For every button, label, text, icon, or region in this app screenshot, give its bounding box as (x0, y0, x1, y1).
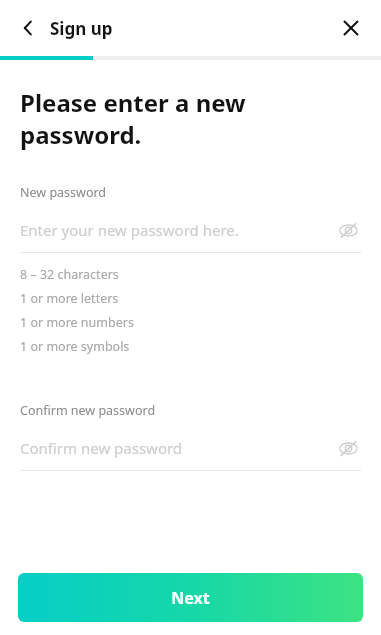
staticText: 1 or more numbers (20, 314, 134, 331)
button[interactable]: Show password (335, 435, 361, 461)
staticText: Please enter a new password. (20, 86, 246, 151)
button[interactable]: Back (6, 6, 50, 50)
staticText: Confirm new password (20, 438, 335, 458)
button[interactable]: Next (18, 573, 363, 622)
button[interactable]: Confirm new password (20, 435, 361, 461)
staticText: Confirm new password (20, 402, 156, 419)
button[interactable]: Show password (335, 217, 361, 243)
staticText: 8 – 32 characters (20, 266, 119, 283)
staticText: 1 or more symbols (20, 338, 130, 355)
staticText: New password (20, 184, 107, 201)
staticText: 1 or more letters (20, 290, 119, 307)
button[interactable]: Enter your new password here. (20, 217, 361, 243)
staticText: Sign up (50, 17, 113, 40)
button[interactable]: Close (329, 6, 373, 50)
staticText: Next (171, 587, 210, 609)
staticText: Enter your new password here. (20, 220, 335, 240)
